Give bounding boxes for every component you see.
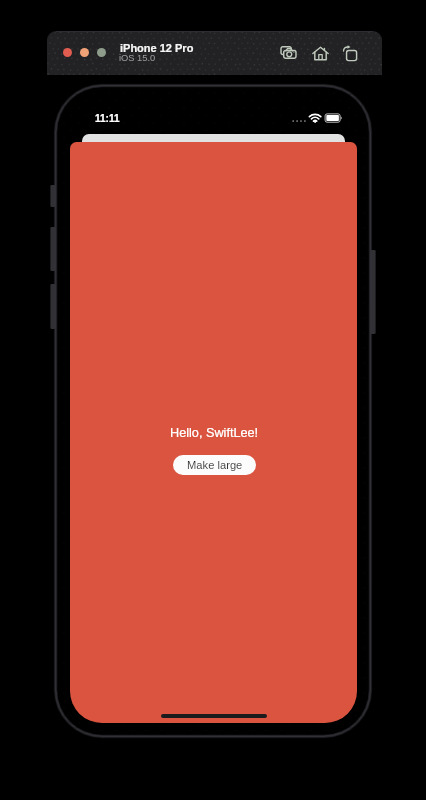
button[interactable]: Screenshot [275, 39, 301, 65]
button[interactable]: Minimize [80, 48, 89, 57]
staticText: Hello, SwiftLee! [170, 426, 259, 440]
staticText: Make large [187, 459, 243, 472]
button[interactable]: Home [307, 40, 333, 66]
staticText: iOS 15.0 [119, 53, 156, 63]
button[interactable]: Close [63, 48, 72, 57]
button[interactable]: Rotate [338, 41, 364, 67]
button[interactable]: Make large [173, 455, 256, 475]
staticText: iPhone 12 Pro [120, 42, 194, 54]
staticText: 11:11 [95, 113, 120, 124]
button[interactable]: Zoom [97, 48, 106, 57]
